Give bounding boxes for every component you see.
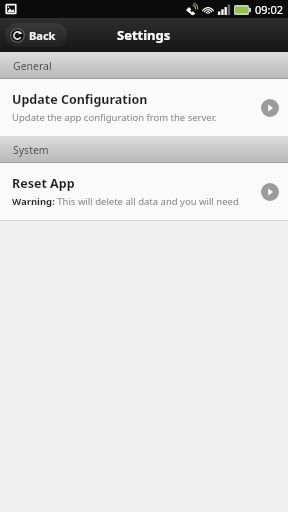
other: Open Update Configuration <box>261 99 279 117</box>
staticText: Settings <box>117 26 171 44</box>
button[interactable]: Back <box>5 23 67 47</box>
staticText: System <box>13 143 49 157</box>
staticText: Update the app configuration from the se… <box>12 111 217 124</box>
button[interactable]: Reset App <box>0 163 288 220</box>
staticText: Warning: This will delete all data and y… <box>12 195 248 208</box>
other: Open Reset App <box>261 183 279 201</box>
button[interactable]: Update Configuration <box>0 79 288 136</box>
staticText: Update Configuration <box>12 91 148 108</box>
staticText: Back <box>29 28 56 43</box>
staticText: General <box>13 59 52 73</box>
staticText: Reset App <box>12 175 75 192</box>
staticText: 09:02 <box>255 2 284 17</box>
